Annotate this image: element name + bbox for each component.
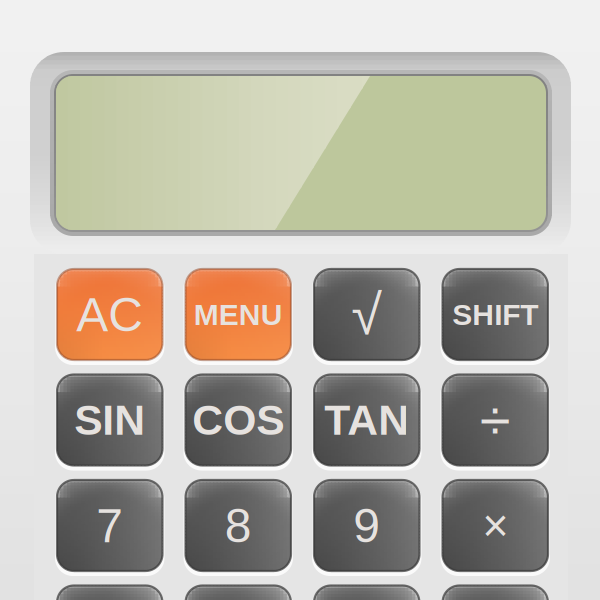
button[interactable]: Sine [57,374,162,465]
staticText: SIN [74,396,145,444]
staticText: ÷ [480,389,511,451]
button[interactable]: Five [185,585,291,600]
staticText: TAN [324,396,409,444]
staticText: 7 [96,499,123,552]
staticText: COS [192,396,284,444]
button[interactable]: Divide [442,374,548,465]
staticText: 8 [225,499,252,552]
button[interactable]: Eight [185,480,291,571]
button[interactable]: Six [314,585,419,600]
button[interactable]: Seven [57,480,162,571]
staticText: √ [351,283,382,346]
staticText: AC [76,288,143,341]
staticText: 9 [353,499,380,552]
button[interactable]: Minus [442,585,548,600]
staticText: × [482,500,508,551]
button[interactable]: All clear [57,269,162,360]
button[interactable]: Multiply [442,480,548,571]
staticText: MENU [194,298,283,331]
button[interactable]: Cosine [185,374,291,465]
button[interactable]: Nine [314,480,419,571]
button[interactable]: Shift [442,269,548,360]
button[interactable]: Square root [314,269,419,360]
button[interactable]: Menu [185,269,291,360]
button[interactable]: Four [57,585,162,600]
staticText: SHIFT [452,298,538,331]
button[interactable]: Tangent [314,374,419,465]
